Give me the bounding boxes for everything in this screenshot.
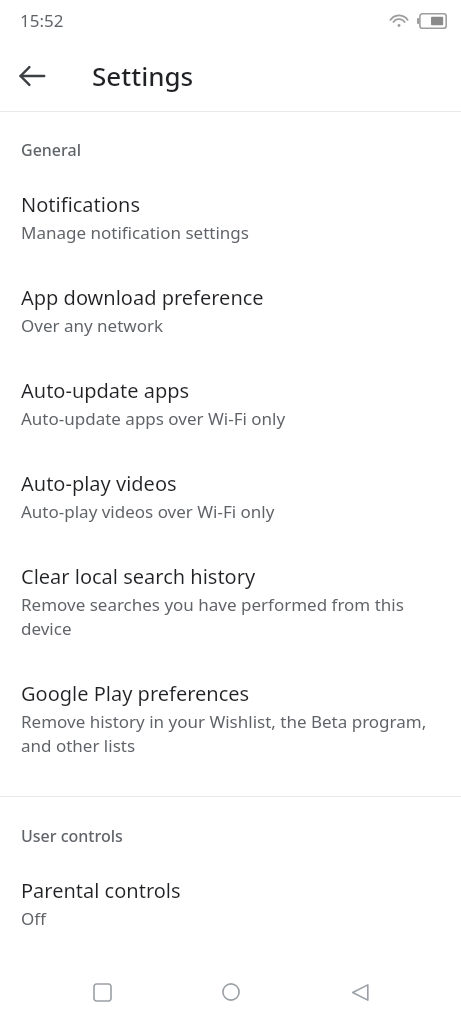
button[interactable]: Back (8, 52, 56, 100)
staticText: Clear local search history (21, 563, 256, 590)
staticText: Auto-update apps over Wi-Fi only (21, 407, 286, 430)
staticText: Remove history in your Wishlist, the Bet… (21, 710, 441, 757)
staticText: General (21, 139, 441, 161)
button[interactable]: Parental controls (0, 877, 461, 930)
staticText: 15:52 (20, 9, 64, 32)
staticText: Auto-play videos (21, 470, 177, 497)
button[interactable]: Google Play preferences (0, 680, 461, 757)
staticText: Over any network (21, 314, 164, 337)
staticText: Off (21, 907, 46, 930)
button[interactable]: Auto-update apps (0, 377, 461, 430)
button[interactable]: App download preference (0, 284, 461, 337)
button[interactable]: Auto-play videos (0, 470, 461, 523)
button[interactable]: Clear local search history (0, 563, 461, 640)
staticText: Parental controls (21, 877, 181, 904)
staticText: Notifications (21, 191, 140, 218)
button[interactable]: Notifications (0, 191, 461, 244)
staticText: User controls (21, 825, 441, 847)
staticText: Remove searches you have performed from … (21, 593, 441, 640)
button[interactable]: Recents (74, 964, 130, 1020)
staticText: Google Play preferences (21, 680, 250, 707)
staticText: Settings (92, 58, 194, 93)
staticText: Auto-play videos over Wi-Fi only (21, 500, 275, 523)
button[interactable]: Home (203, 964, 259, 1020)
staticText: Auto-update apps (21, 377, 190, 404)
staticText: Manage notification settings (21, 221, 249, 244)
button[interactable]: Back (332, 964, 388, 1020)
staticText: App download preference (21, 284, 264, 311)
